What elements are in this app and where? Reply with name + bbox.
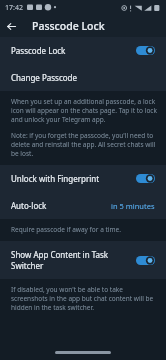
staticText: When you set up an additional passcode, … xyxy=(11,97,158,124)
staticText: 17:42 xyxy=(5,3,23,13)
staticText: Require passcode if away for a time. xyxy=(11,225,121,234)
button[interactable]: Change Passcode xyxy=(0,64,166,91)
staticText: Show App Content in Task Switcher xyxy=(11,249,136,271)
button[interactable]: Back xyxy=(0,15,22,37)
staticText: Passcode Lock xyxy=(11,45,66,56)
button[interactable]: Passcode Lock xyxy=(0,37,166,64)
button[interactable]: Unlock with Fingerprint xyxy=(0,165,166,192)
staticText: Auto-lock xyxy=(11,200,47,211)
staticText: Note: if you forget the passcode, you'll… xyxy=(11,131,158,158)
staticText: Unlock with Fingerprint xyxy=(11,173,100,184)
staticText: Change Passcode xyxy=(11,72,78,83)
button[interactable]: Show App Content in Task Switcher xyxy=(0,241,166,279)
staticText: in 5 minutes xyxy=(111,201,155,211)
staticText: Passcode Lock xyxy=(32,19,105,33)
staticText: If disabled, you won't be able to take s… xyxy=(11,285,156,312)
button[interactable]: Auto-lock xyxy=(0,192,166,219)
